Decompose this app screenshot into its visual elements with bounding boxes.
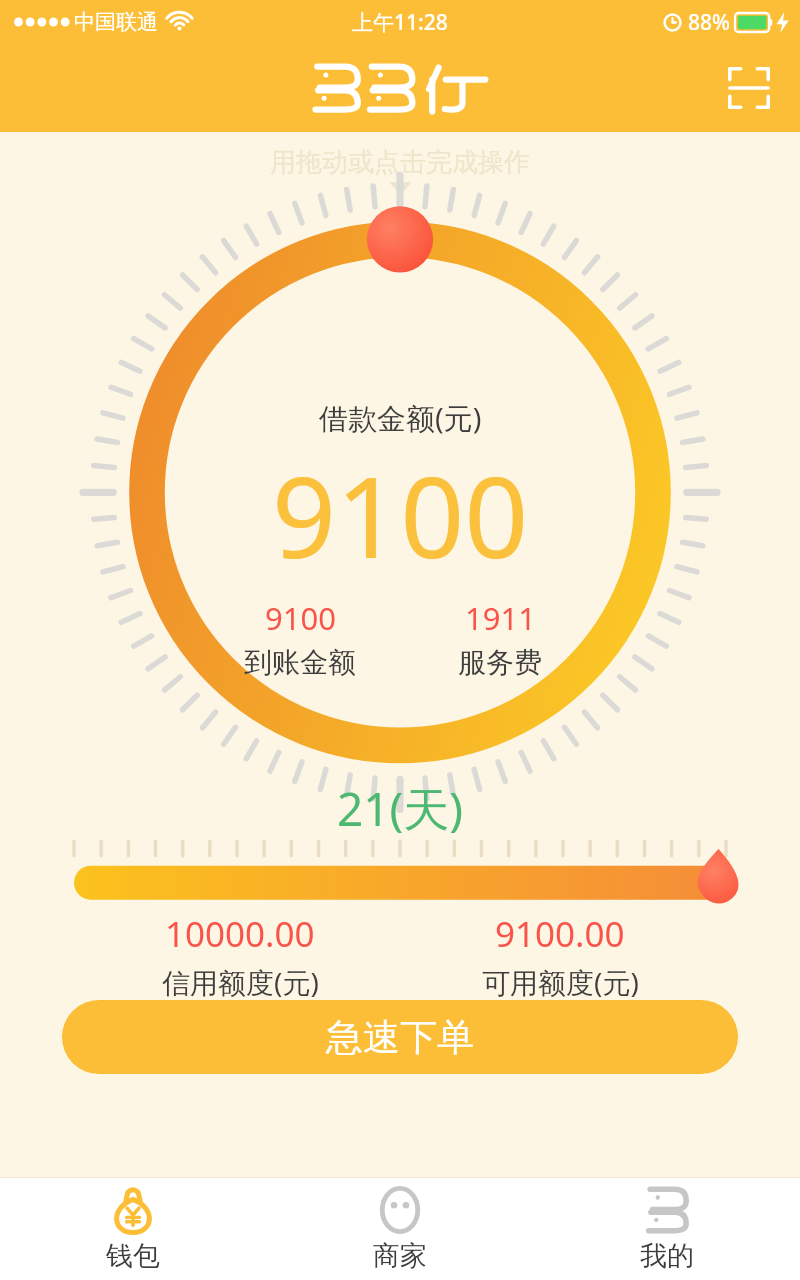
button[interactable]: 钱包 [0, 1178, 266, 1280]
button[interactable]: 商家 [266, 1178, 533, 1280]
staticText: 借款金额(元) [319, 398, 482, 438]
staticText: 9100 [265, 597, 336, 639]
staticText: 9100.00 [495, 910, 625, 958]
staticText: 9100 [272, 438, 529, 591]
staticText: 信用额度(元) [162, 963, 319, 1001]
button[interactable]: 借款金额(元) [0, 202, 800, 822]
staticText: 急速下单 [326, 1014, 474, 1061]
staticText: 88% [688, 8, 730, 37]
staticText: 钱包 [106, 1239, 160, 1273]
staticText: 中国联通 [74, 9, 158, 35]
button[interactable] [0, 837, 800, 909]
staticText: 商家 [373, 1239, 427, 1273]
button[interactable]: Scan QR code [720, 59, 778, 117]
button[interactable]: 急速下单 [62, 1000, 738, 1074]
staticText: 1911 [465, 597, 536, 639]
staticText: 到账金额 [244, 645, 356, 680]
staticText: 可用额度(元) [482, 963, 639, 1001]
staticText: 10000.00 [165, 910, 315, 958]
staticText: 21(天) [0, 777, 800, 840]
staticText: 上午11:28 [352, 8, 448, 37]
button[interactable]: 我的 [533, 1178, 800, 1280]
staticText: 我的 [640, 1239, 694, 1273]
staticText: 服务费 [458, 645, 542, 680]
staticText: 用拖动或点击完成操作 [270, 146, 530, 179]
